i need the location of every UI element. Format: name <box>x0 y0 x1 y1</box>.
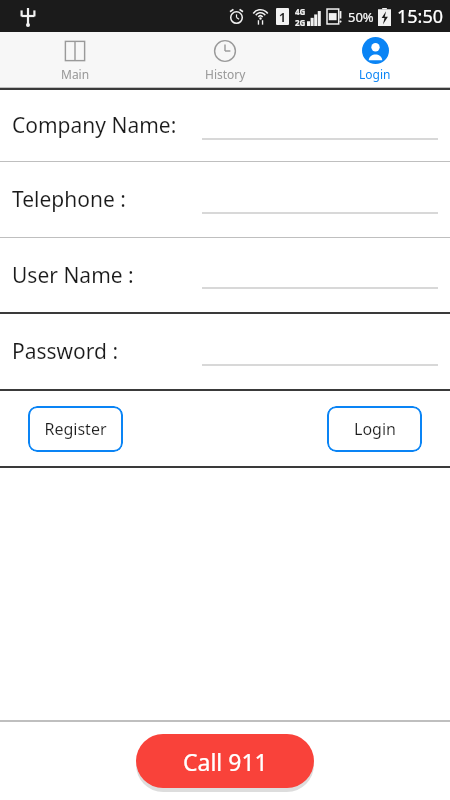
staticText: Telephone : <box>12 185 202 214</box>
staticText: Call 911 <box>183 746 268 777</box>
staticText: 1 <box>279 9 286 25</box>
staticText: 50% <box>348 8 374 26</box>
staticText: Password : <box>12 337 202 366</box>
button[interactable]: Company Name: <box>0 90 450 161</box>
staticText: Login <box>359 66 391 82</box>
button[interactable]: Main <box>0 32 150 87</box>
button[interactable]: Register <box>28 406 123 452</box>
staticText: 4G <box>295 6 306 17</box>
staticText: 2G <box>295 17 306 28</box>
staticText: User Name : <box>12 261 202 290</box>
staticText: Company Name: <box>12 111 202 140</box>
button[interactable]: Call 911 <box>136 734 314 788</box>
other: Login <box>362 37 389 64</box>
button[interactable]: Login <box>327 406 422 452</box>
staticText: Main <box>61 66 90 82</box>
staticText: 15:50 <box>397 4 444 29</box>
button[interactable]: Login <box>300 32 450 87</box>
button[interactable]: User Name : <box>0 238 450 312</box>
button[interactable]: Password : <box>0 314 450 389</box>
button[interactable]: History <box>150 32 300 87</box>
staticText: History <box>205 66 246 82</box>
staticText: Register <box>44 418 107 440</box>
staticText: Login <box>354 418 396 440</box>
button[interactable]: Telephone : <box>0 162 450 237</box>
